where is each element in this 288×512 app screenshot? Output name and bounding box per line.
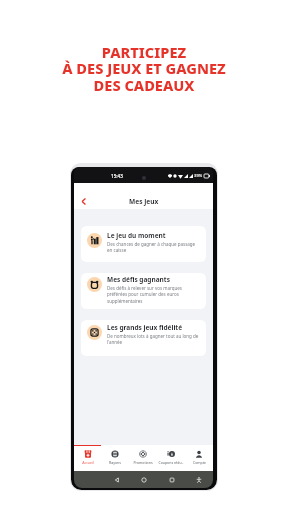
button[interactable]: Le jeu du moment (81, 226, 206, 262)
staticText: Des défis à relever sur vos marques préf… (107, 285, 200, 305)
staticText: Rayons (109, 460, 121, 465)
button[interactable]: Mes défis gagnants (81, 273, 206, 309)
button[interactable]: Accueil (74, 445, 101, 471)
button[interactable]: Home (139, 475, 149, 485)
staticText: 39% (194, 173, 203, 179)
staticText: Les grands jeux fidélité (107, 323, 183, 332)
button[interactable]: Back (112, 475, 122, 485)
staticText: Des chances de gagner à chaque passage e… (107, 241, 200, 253)
staticText: Promotions (133, 460, 153, 465)
button[interactable]: Recents (167, 475, 177, 485)
button[interactable]: Back (77, 195, 90, 208)
button[interactable]: Compte (185, 445, 213, 471)
staticText: PARTICIPEZ À DES JEUX ET GAGNEZ DES CADE… (0, 42, 288, 96)
staticText: 15:43 (111, 173, 123, 179)
staticText: De nombreux lots à gagner tout au long d… (107, 333, 200, 345)
button[interactable]: Rayons (101, 445, 129, 471)
button[interactable]: Promotions (129, 445, 157, 471)
button[interactable]: Les grands jeux fidélité (81, 320, 206, 356)
button[interactable]: Coupons rédu.. (157, 445, 185, 471)
staticText: Mes défis gagnants (107, 275, 170, 284)
staticText: Coupons rédu.. (158, 460, 184, 465)
staticText: Compte (193, 460, 206, 465)
staticText: Accueil (82, 460, 94, 465)
button[interactable]: Accessibility (194, 475, 204, 485)
staticText: Le jeu du moment (107, 231, 166, 240)
staticText: Mes Jeux (129, 197, 159, 206)
